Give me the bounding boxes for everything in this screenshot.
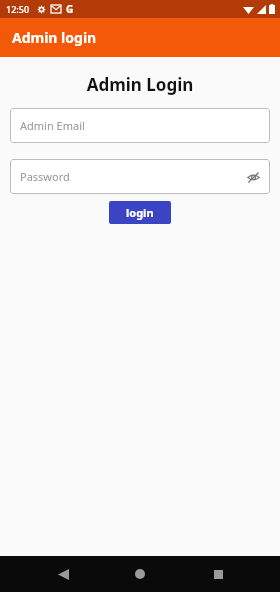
button[interactable]: Password — [10, 159, 270, 194]
staticText: Password — [20, 169, 70, 184]
button[interactable]: Back — [48, 559, 78, 589]
staticText: Admin Login — [0, 73, 280, 96]
staticText: G — [66, 2, 74, 16]
button[interactable]: Home — [125, 559, 155, 589]
button[interactable]: Admin Email — [10, 108, 270, 143]
button[interactable]: login — [109, 201, 171, 224]
staticText: Admin login — [12, 28, 97, 47]
staticText: login — [126, 205, 154, 220]
button[interactable]: Toggle password visibility — [245, 169, 261, 185]
staticText: 12:50 — [6, 3, 30, 15]
staticText: Admin Email — [20, 118, 85, 133]
button[interactable]: Recent apps — [203, 559, 233, 589]
